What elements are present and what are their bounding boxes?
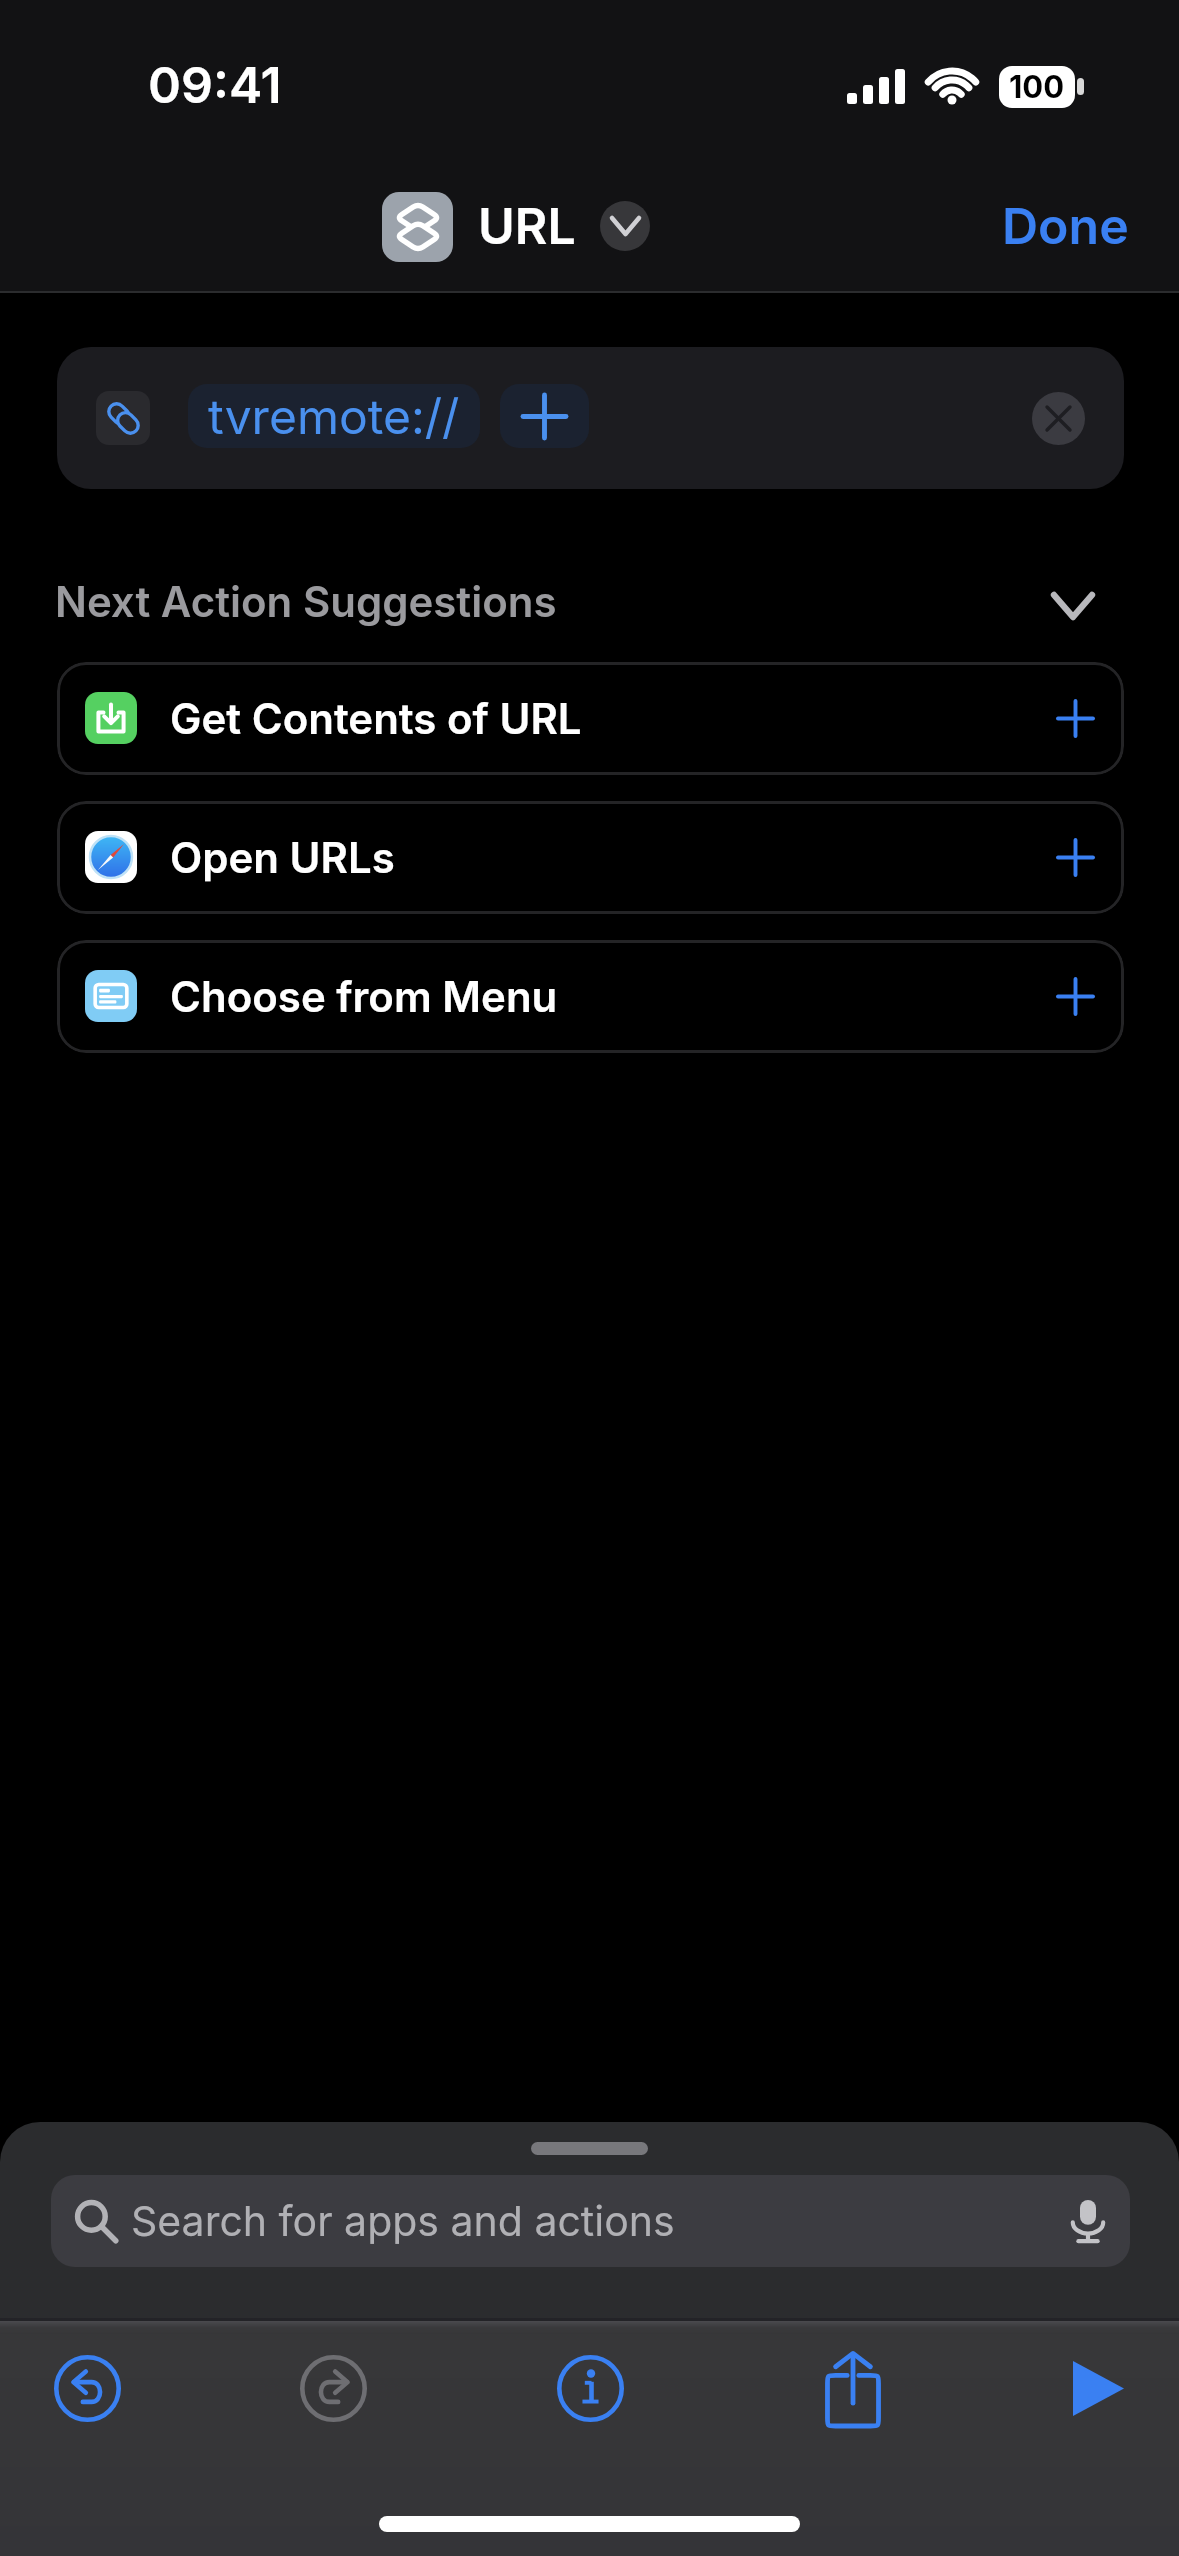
button[interactable]: Show more (600, 201, 650, 251)
button[interactable]: tvremote:// (57, 347, 1124, 489)
staticText: Get Contents of URL (170, 693, 582, 744)
button[interactable]: Add Open URLs (1058, 840, 1093, 875)
button[interactable]: Add Get Contents of URL (1058, 701, 1093, 736)
button[interactable]: Clear (1032, 392, 1085, 445)
button[interactable]: Add Choose from Menu (1058, 979, 1093, 1014)
button[interactable]: Open URLs (57, 801, 1124, 914)
button[interactable]: Undo (37, 2338, 137, 2438)
staticText: Next Action Suggestions (55, 576, 557, 627)
button[interactable]: Add variable (500, 384, 589, 448)
button[interactable]: Search for apps and actions (51, 2175, 1130, 2267)
button[interactable]: Done (978, 178, 1153, 274)
button[interactable]: Next Action Suggestions (42, 568, 1137, 638)
staticText: tvremote:// (208, 387, 460, 445)
staticText: Choose from Menu (170, 971, 558, 1022)
button[interactable]: Run (1048, 2338, 1148, 2438)
button[interactable]: URL (374, 186, 584, 268)
button[interactable]: Redo (283, 2338, 383, 2438)
button[interactable]: Information (540, 2338, 640, 2438)
staticText: Open URLs (170, 832, 395, 883)
staticText: 100 (1009, 68, 1065, 106)
button[interactable]: Share (803, 2338, 903, 2438)
staticText: URL (478, 196, 576, 256)
staticText: Search for apps and actions (131, 2196, 675, 2246)
staticText: Done (1002, 196, 1129, 256)
button[interactable]: Get Contents of URL (57, 662, 1124, 775)
button[interactable]: Choose from Menu (57, 940, 1124, 1053)
staticText: 09:41 (148, 55, 282, 115)
